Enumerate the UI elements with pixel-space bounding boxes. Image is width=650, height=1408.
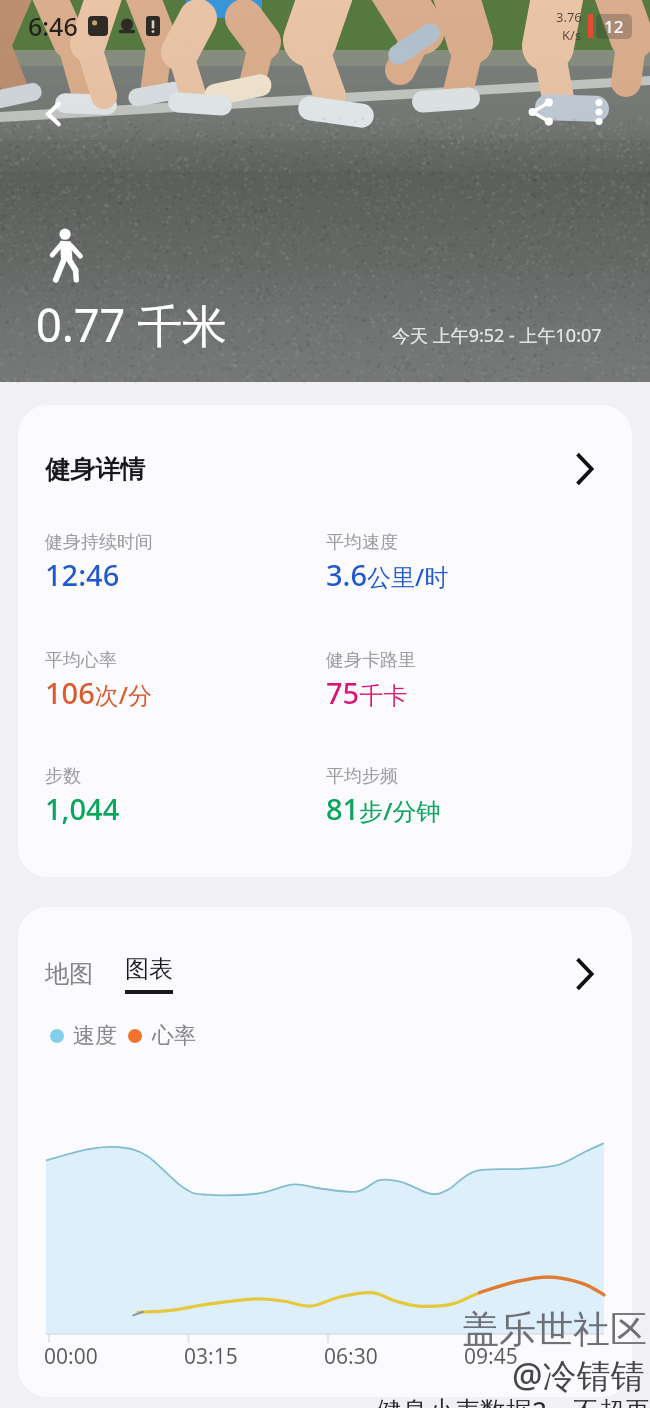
staticText: 03:15 bbox=[184, 1342, 238, 1371]
staticText: 心率 bbox=[152, 1022, 196, 1050]
button[interactable]: More options bbox=[573, 86, 625, 138]
staticText: 平均步频 bbox=[326, 765, 398, 788]
staticText: 12:46 bbox=[45, 555, 120, 594]
staticText: @冷锖锖 bbox=[512, 1352, 645, 1398]
staticText: 3.76 bbox=[556, 8, 582, 26]
button[interactable]: 图表 bbox=[125, 954, 173, 994]
staticText: 步数 bbox=[45, 765, 81, 788]
staticText: 健身持续时间 bbox=[45, 531, 153, 554]
staticText: 75千卡 bbox=[326, 673, 408, 712]
staticText: 1,044 bbox=[45, 789, 120, 828]
staticText: 00:00 bbox=[44, 1342, 98, 1371]
staticText: 81步/分钟 bbox=[326, 789, 441, 828]
button[interactable]: Share bbox=[515, 86, 567, 138]
staticText: 盖乐世社区 bbox=[462, 1306, 647, 1353]
staticText: 健身详情 bbox=[45, 454, 145, 485]
staticText: 平均速度 bbox=[326, 531, 398, 554]
staticText: 106次/分 bbox=[45, 673, 153, 712]
staticText: 09:45 bbox=[464, 1342, 518, 1371]
staticText: 06:30 bbox=[324, 1342, 378, 1371]
staticText: 平均心率 bbox=[45, 649, 117, 672]
staticText: 健身卡路里 bbox=[326, 649, 416, 672]
staticText: 0.77 千米 bbox=[36, 294, 227, 355]
staticText: 12 bbox=[604, 15, 624, 38]
button[interactable]: Back bbox=[26, 86, 82, 142]
button[interactable]: 地图 bbox=[45, 959, 93, 989]
staticText: 3.6公里/时 bbox=[326, 555, 449, 594]
staticText: 速度 bbox=[73, 1022, 117, 1050]
staticText: K/s bbox=[562, 26, 582, 44]
staticText: 今天 上午9:52 - 上午10:07 bbox=[392, 323, 602, 348]
staticText: 图表 bbox=[125, 954, 173, 984]
staticText: 地图 bbox=[45, 959, 93, 989]
staticText: 6:46 bbox=[28, 9, 78, 43]
staticText: 健身小麦数据2。不超再多 bbox=[376, 1392, 650, 1408]
button[interactable]: 健身详情 bbox=[18, 405, 632, 877]
